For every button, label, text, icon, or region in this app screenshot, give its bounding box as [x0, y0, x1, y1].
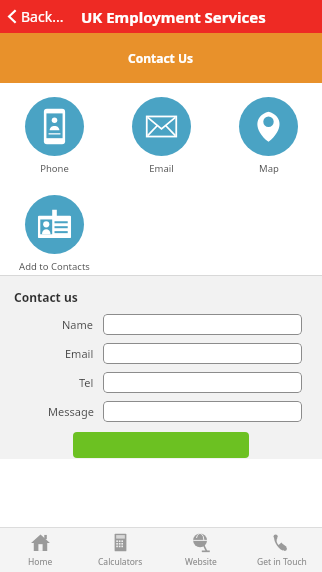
- staticText: Phone: [40, 162, 69, 175]
- button[interactable]: Get in Touch: [241, 527, 322, 572]
- button[interactable]: Name: [103, 314, 302, 335]
- staticText: Back...: [21, 7, 64, 26]
- button[interactable]: Back...: [6, 3, 66, 30]
- staticText: Contact us: [14, 289, 78, 305]
- button[interactable]: Map: [215, 95, 322, 177]
- staticText: Message: [48, 404, 94, 419]
- button[interactable]: Email: [108, 95, 215, 177]
- staticText: Calculators: [98, 556, 143, 568]
- button[interactable]: Website: [160, 527, 241, 572]
- staticText: UK Employment Services: [81, 7, 266, 27]
- staticText: Email: [149, 162, 174, 175]
- staticText: Name: [62, 317, 94, 332]
- staticText: Email: [65, 346, 94, 361]
- staticText: Add to Contacts: [19, 260, 90, 273]
- button[interactable]: Email: [103, 343, 302, 364]
- staticText: Contact Us: [128, 50, 194, 66]
- staticText: Map: [259, 162, 279, 175]
- staticText: Website: [185, 556, 217, 568]
- button[interactable]: Calculators: [80, 527, 160, 572]
- button[interactable]: Phone: [0, 95, 108, 177]
- staticText: Tel: [79, 375, 94, 390]
- staticText: Get in Touch: [257, 556, 307, 568]
- button[interactable]: Tel: [103, 372, 302, 393]
- button[interactable]: Add to Contacts: [0, 193, 108, 275]
- button[interactable]: Message: [103, 401, 302, 422]
- staticText: Home: [28, 556, 53, 568]
- button[interactable]: Home: [0, 527, 80, 572]
- button[interactable]: [73, 432, 249, 458]
